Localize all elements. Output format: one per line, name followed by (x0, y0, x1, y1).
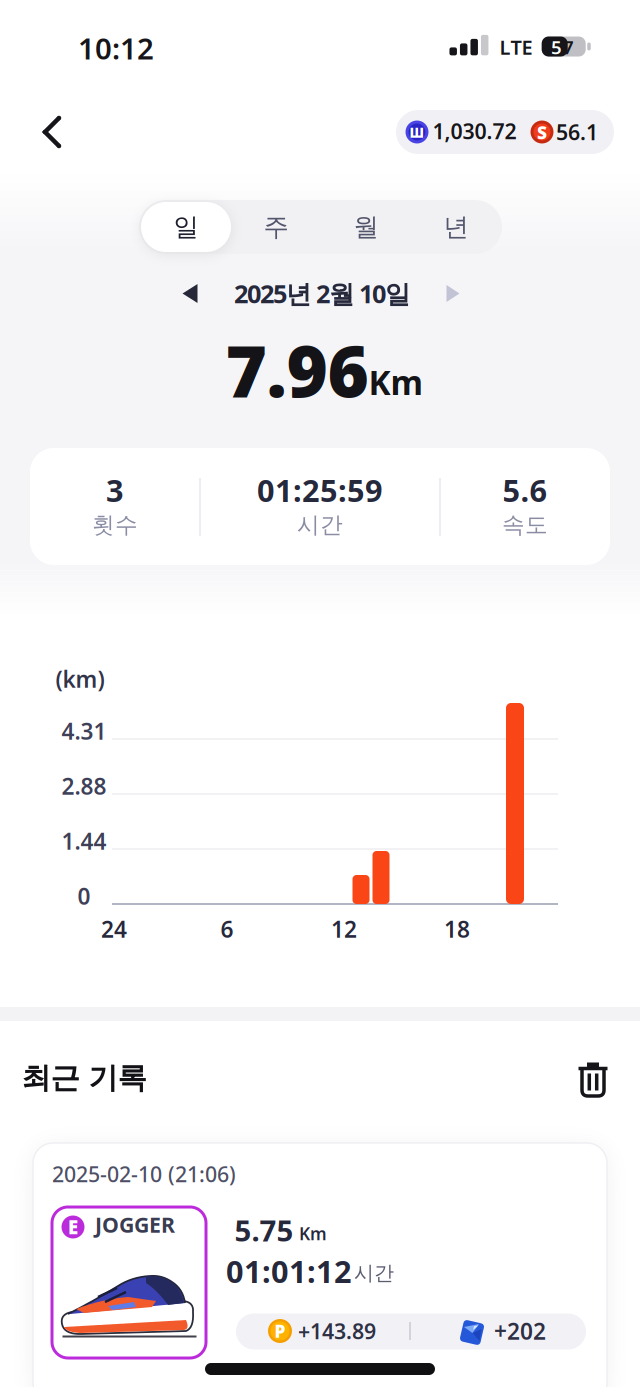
staticText: 일 (173, 211, 198, 242)
staticText: 2025년 2월 10일 (234, 277, 410, 310)
staticText: 10:12 (78, 28, 154, 67)
staticText: +202 (494, 1316, 546, 1346)
staticText: 6 (220, 914, 233, 944)
staticText: 5 (551, 35, 562, 59)
staticText: 년 (443, 211, 468, 242)
button[interactable]: 월 (321, 200, 411, 254)
button[interactable]: Next day (431, 271, 475, 315)
staticText: 횟수 (92, 511, 138, 539)
staticText: 2.88 (61, 771, 106, 801)
button[interactable]: 년 (411, 200, 501, 254)
staticText: 5.6 (502, 470, 547, 510)
staticText: 3 (106, 470, 124, 510)
staticText: P (274, 1319, 285, 1342)
button[interactable]: Run record 2025-02-10 (33, 1143, 607, 1387)
staticText: 0 (77, 881, 90, 911)
staticText: Km (368, 360, 423, 404)
staticText: 속도 (502, 511, 548, 539)
staticText: 4.31 (61, 716, 106, 746)
staticText: (km) (55, 664, 104, 694)
staticText: 주 (263, 211, 288, 242)
button[interactable]: 주 (231, 200, 321, 254)
staticText: LTE (499, 34, 532, 60)
staticText: 24 (101, 914, 127, 944)
staticText: +143.89 (298, 1317, 376, 1345)
button[interactable]: Wallet balance (396, 110, 614, 154)
staticText: Ш (409, 124, 424, 141)
button[interactable]: Delete records (570, 1057, 614, 1101)
staticText: S (537, 121, 547, 144)
staticText: 18 (444, 914, 470, 944)
staticText: 01:25:59 (257, 470, 383, 510)
staticText: 7 (563, 35, 574, 59)
staticText: Km (299, 1222, 327, 1245)
staticText: 월 (353, 211, 378, 242)
staticText: 1,030.72 (432, 117, 516, 145)
staticText: 5.75 (234, 1210, 293, 1249)
staticText: 12 (331, 914, 357, 944)
staticText: 1.44 (61, 826, 106, 856)
button[interactable]: 일 (141, 200, 231, 254)
staticText: 7.96 (225, 323, 368, 417)
staticText: 시간 (297, 511, 343, 539)
staticText: 56.1 (556, 118, 598, 146)
staticText: JOGGER (95, 1210, 175, 1239)
staticText: E (68, 1215, 78, 1239)
staticText: 최근 기록 (21, 1060, 146, 1096)
staticText: 01:01:12 (226, 1251, 352, 1291)
staticText: 2025-02-10 (21:06) (52, 1160, 236, 1188)
staticText: 시간 (354, 1261, 394, 1285)
button[interactable]: Previous day (168, 271, 212, 315)
button[interactable]: Back (28, 108, 76, 156)
